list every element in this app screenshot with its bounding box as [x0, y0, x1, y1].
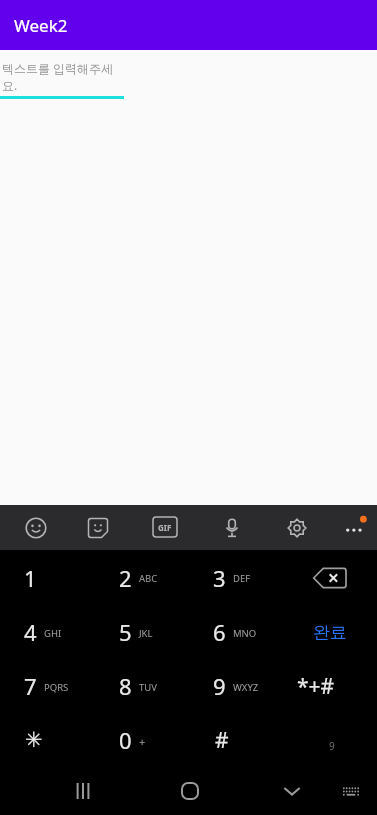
button[interactable]: 2 [95, 550, 189, 605]
button[interactable]: 3 [189, 550, 283, 605]
staticText: Week2 [14, 14, 68, 37]
button[interactable]: Hide keyboard [274, 767, 310, 815]
staticText: 1 [24, 563, 37, 593]
button[interactable]: 9 [189, 659, 283, 713]
staticText: 7 [24, 671, 37, 701]
button[interactable]: Backspace [283, 550, 377, 605]
staticText: 0 [119, 725, 132, 755]
button[interactable]: Emoji [20, 512, 52, 543]
staticText: ✳ [25, 728, 43, 752]
button[interactable]: 4 [0, 605, 95, 659]
staticText: PQRS [44, 681, 69, 694]
button[interactable]: *+# [283, 659, 377, 713]
button[interactable]: Home [170, 767, 210, 815]
button[interactable]: Key [283, 713, 377, 767]
staticText: 5 [119, 617, 132, 647]
button[interactable]: Recent apps [65, 767, 101, 815]
staticText: WXYZ [233, 681, 259, 694]
staticText: DEF [233, 572, 251, 585]
staticText: 3 [213, 563, 226, 593]
button[interactable]: Voice input [216, 512, 248, 543]
staticText: TUV [139, 681, 157, 694]
staticText: MNO [233, 627, 257, 640]
button[interactable]: 0 [95, 713, 189, 767]
button[interactable]: 완료 [283, 605, 377, 659]
staticText: 텍스트를 입력해주세요. [2, 60, 124, 93]
button[interactable]: 5 [95, 605, 189, 659]
button[interactable]: More options [341, 514, 369, 540]
staticText: ABC [139, 572, 158, 585]
staticText: GIF [158, 522, 172, 533]
button[interactable]: Change keyboard [334, 767, 368, 815]
staticText: *+# [297, 672, 335, 701]
button[interactable]: # [189, 713, 283, 767]
staticText: 9 [213, 671, 226, 701]
button[interactable]: 1 [0, 550, 95, 605]
button[interactable]: 6 [189, 605, 283, 659]
staticText: 4 [24, 617, 37, 647]
staticText: GHI [44, 627, 62, 640]
staticText: 8 [119, 671, 132, 701]
staticText: 6 [213, 617, 226, 647]
button[interactable]: 7 [0, 659, 95, 713]
button[interactable]: 8 [95, 659, 189, 713]
staticText: + [139, 734, 146, 749]
button[interactable]: 텍스트를 입력해주세요. [0, 60, 124, 99]
staticText: 2 [119, 563, 132, 593]
button[interactable]: Stickers [82, 512, 114, 543]
button[interactable]: GIF [152, 516, 178, 538]
staticText: # [215, 726, 229, 755]
staticText: JKL [139, 627, 153, 640]
staticText: 9 [329, 739, 335, 753]
button[interactable]: ✳ [0, 713, 95, 767]
button[interactable]: Keyboard settings [281, 512, 313, 543]
staticText: 완료 [313, 622, 347, 643]
